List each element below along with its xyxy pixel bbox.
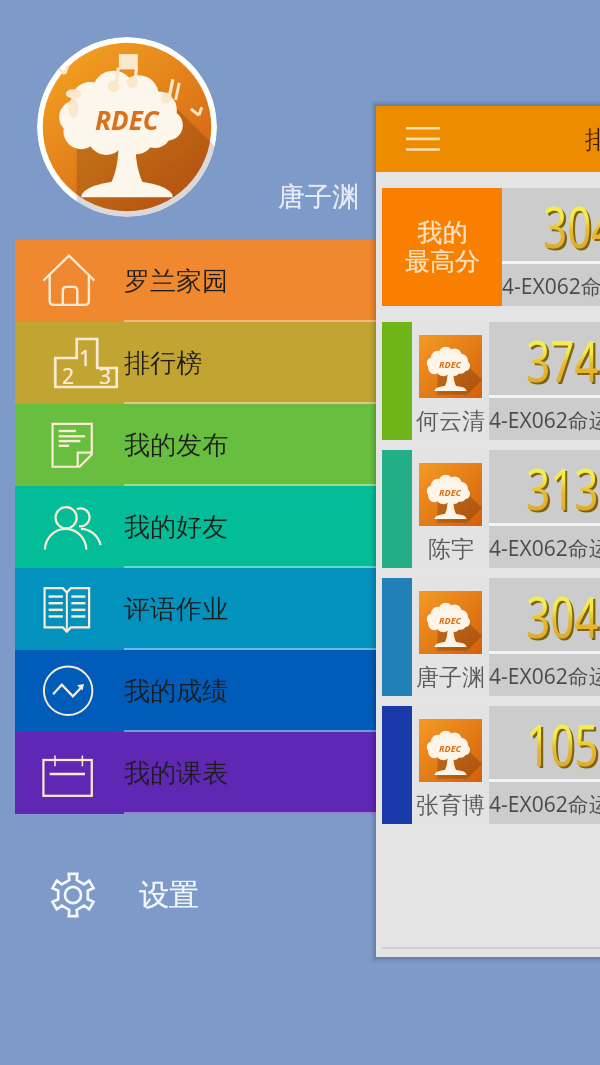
staticText: RDEC [439,358,462,370]
button[interactable]: 我的好友 [15,486,600,568]
staticText: 3040 [545,189,600,267]
staticText: 3040 [543,187,600,265]
button[interactable]: 1 [15,322,600,404]
staticText: 我的发布 [124,429,228,462]
staticText: RDEC [439,486,462,498]
staticText: 3040 [528,579,600,657]
staticText: RDEC [95,102,159,137]
button[interactable]: 设置 [0,858,260,932]
button[interactable]: RDEC [382,322,600,440]
staticText: 我的好友 [124,511,228,544]
staticText: 3040 [526,577,600,655]
staticText: 4-EX062命运 [489,406,600,435]
button[interactable]: 我的课表 [15,732,600,814]
staticText: 1 [79,344,92,373]
button[interactable]: RDEC [382,578,600,696]
staticText: 3137 [526,449,600,527]
staticText: 3745 [528,323,600,401]
staticText: 何云清 [416,407,485,436]
staticText: 1050 [526,705,600,783]
staticText: 4-EX062命运 [489,662,600,691]
staticText: 罗兰家园 [124,265,228,298]
staticText: RDEC [439,614,462,626]
button[interactable]: Open navigation menu [399,115,447,163]
staticText: 唐子渊 [278,180,359,214]
staticText: RDEC [439,742,462,754]
button[interactable]: RDEC [382,450,600,568]
button[interactable]: 评语作业 [15,568,600,650]
staticText: 排行榜 [585,124,600,155]
button[interactable]: RDEC [382,706,600,824]
staticText: 3745 [526,321,600,399]
staticText: 陈宇 [428,535,474,564]
staticText: 3 [99,362,112,391]
staticText: 4-EX062命运 [489,534,600,563]
staticText: 我的课表 [124,757,228,790]
staticText: 2 [62,362,75,391]
staticText: 唐子渊 [416,663,485,692]
staticText: 3137 [528,451,600,529]
button[interactable]: 罗兰家园 [15,240,600,322]
staticText: 我的 最高分 [405,217,480,277]
button[interactable]: 我的发布 [15,404,600,486]
staticText: 1050 [528,707,600,785]
staticText: 张育博 [416,791,485,820]
staticText: 设置 [139,876,199,914]
button[interactable]: 我的成绩 [15,650,600,732]
staticText: 4-EX062命运 [502,272,600,301]
staticText: 评语作业 [124,593,228,626]
staticText: 我的成绩 [124,675,228,708]
staticText: 排行榜 [124,347,202,380]
staticText: 4-EX062命运 [489,790,600,819]
